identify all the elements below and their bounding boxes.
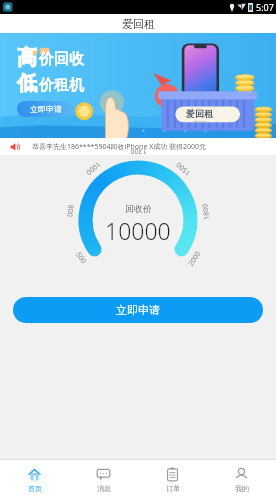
staticText: 立即申请 bbox=[30, 104, 62, 114]
staticText: 恭喜李先生186****5904回收iPhone X成功 获得2000元 bbox=[32, 142, 207, 152]
button[interactable]: 我的 bbox=[207, 460, 276, 500]
button[interactable]: 消息 bbox=[69, 460, 138, 500]
staticText: 10000 bbox=[105, 215, 171, 246]
staticText: 价回收 bbox=[39, 50, 84, 69]
staticText: 我的 bbox=[235, 484, 249, 493]
staticText: 首页 bbox=[28, 484, 42, 493]
staticText: 爱回租 bbox=[122, 17, 155, 31]
staticText: 低 bbox=[17, 71, 37, 96]
staticText: 订单 bbox=[166, 484, 180, 493]
staticText: i hui zu bbox=[193, 119, 207, 124]
button[interactable]: 首页 bbox=[0, 460, 69, 500]
button[interactable]: 立即申请 bbox=[17, 101, 75, 117]
staticText: 5:07 bbox=[256, 1, 274, 13]
staticText: 消息 bbox=[97, 484, 111, 493]
staticText: 价租机 bbox=[39, 76, 84, 95]
staticText: 高 bbox=[17, 45, 37, 70]
staticText: 爱回租 bbox=[186, 108, 213, 119]
button[interactable]: 订单 bbox=[138, 460, 207, 500]
staticText: 立即申请 bbox=[116, 303, 160, 317]
staticText: 回收价 bbox=[125, 203, 152, 214]
button[interactable]: 立即申请 bbox=[13, 297, 263, 323]
